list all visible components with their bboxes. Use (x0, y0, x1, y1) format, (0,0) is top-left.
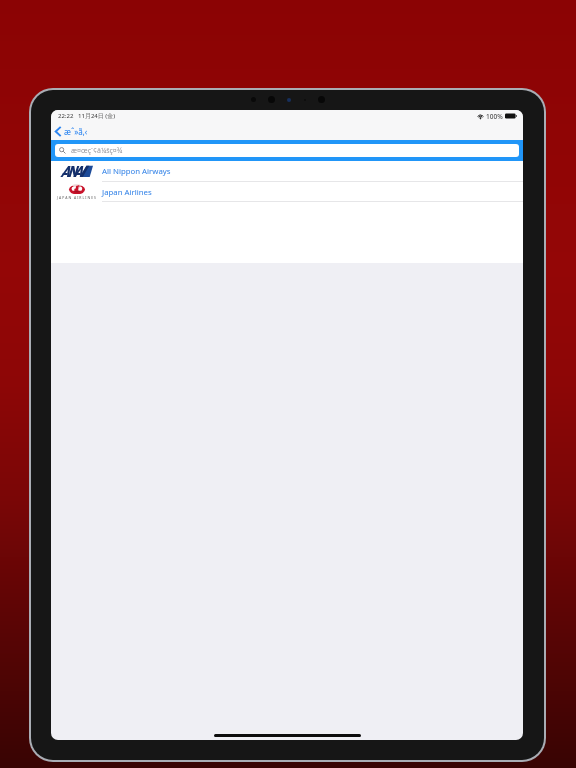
staticText: Japan Airlines (102, 187, 152, 198)
button[interactable]: All Nippon Airways (51, 161, 523, 182)
staticText: 22:22 11月24日 (金) (58, 112, 116, 120)
staticText: æ¤œç´¢ä¼šç¤¾ (71, 146, 123, 156)
staticText: All Nippon Airways (102, 166, 171, 177)
staticText: 100% (486, 112, 503, 121)
button[interactable]: JAPAN AIRLINES (51, 182, 523, 202)
button[interactable]: Back (51, 124, 94, 139)
staticText: JAPAN AIRLINES (57, 195, 97, 200)
staticText: æˆ»ã‚‹ (64, 126, 88, 137)
button[interactable]: æ¤œç´¢ä¼šç¤¾ (55, 144, 519, 157)
